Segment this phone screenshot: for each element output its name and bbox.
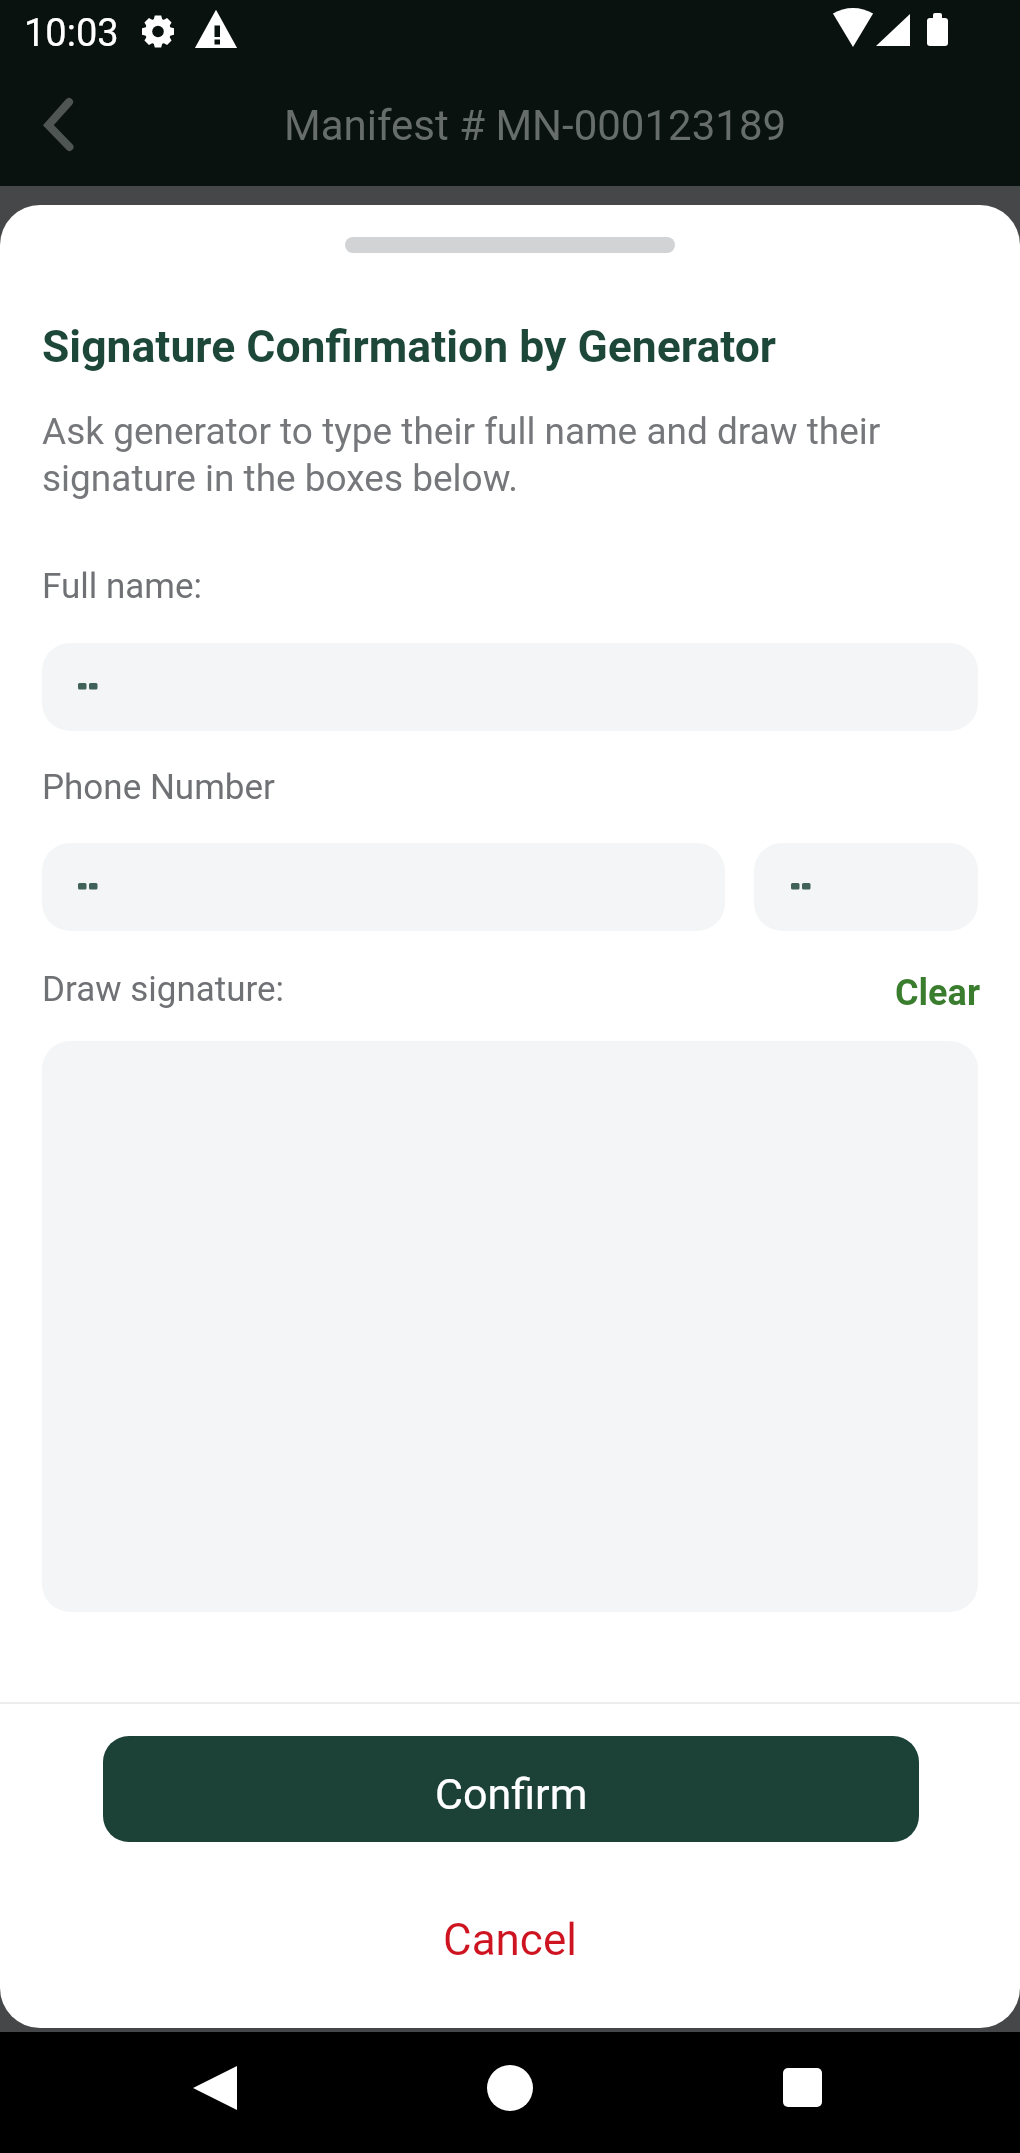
button[interactable]: [748, 2052, 858, 2132]
button[interactable]: [160, 2052, 270, 2132]
staticText: Ask generator to type their full name an…: [42, 410, 881, 500]
button[interactable]: Clear: [863, 963, 981, 1023]
button[interactable]: [455, 2052, 565, 2132]
staticText: Confirm: [435, 1769, 588, 1819]
staticText: Manifest # MN-000123189: [284, 101, 787, 150]
staticText: Signature Confirmation by Generator: [42, 321, 777, 373]
button[interactable]: Confirm: [103, 1736, 919, 1842]
staticText: Draw signature:: [42, 969, 285, 1010]
staticText: 10:03: [24, 11, 119, 56]
staticText: Full name:: [42, 566, 203, 607]
button[interactable]: Cancel: [360, 1905, 660, 1975]
button[interactable]: [754, 843, 978, 931]
button[interactable]: [30, 95, 94, 159]
button[interactable]: [42, 643, 978, 731]
staticText: Clear: [895, 972, 981, 1014]
button[interactable]: [42, 843, 725, 931]
staticText: Phone Number: [42, 767, 275, 808]
staticText: Cancel: [443, 1914, 577, 1966]
